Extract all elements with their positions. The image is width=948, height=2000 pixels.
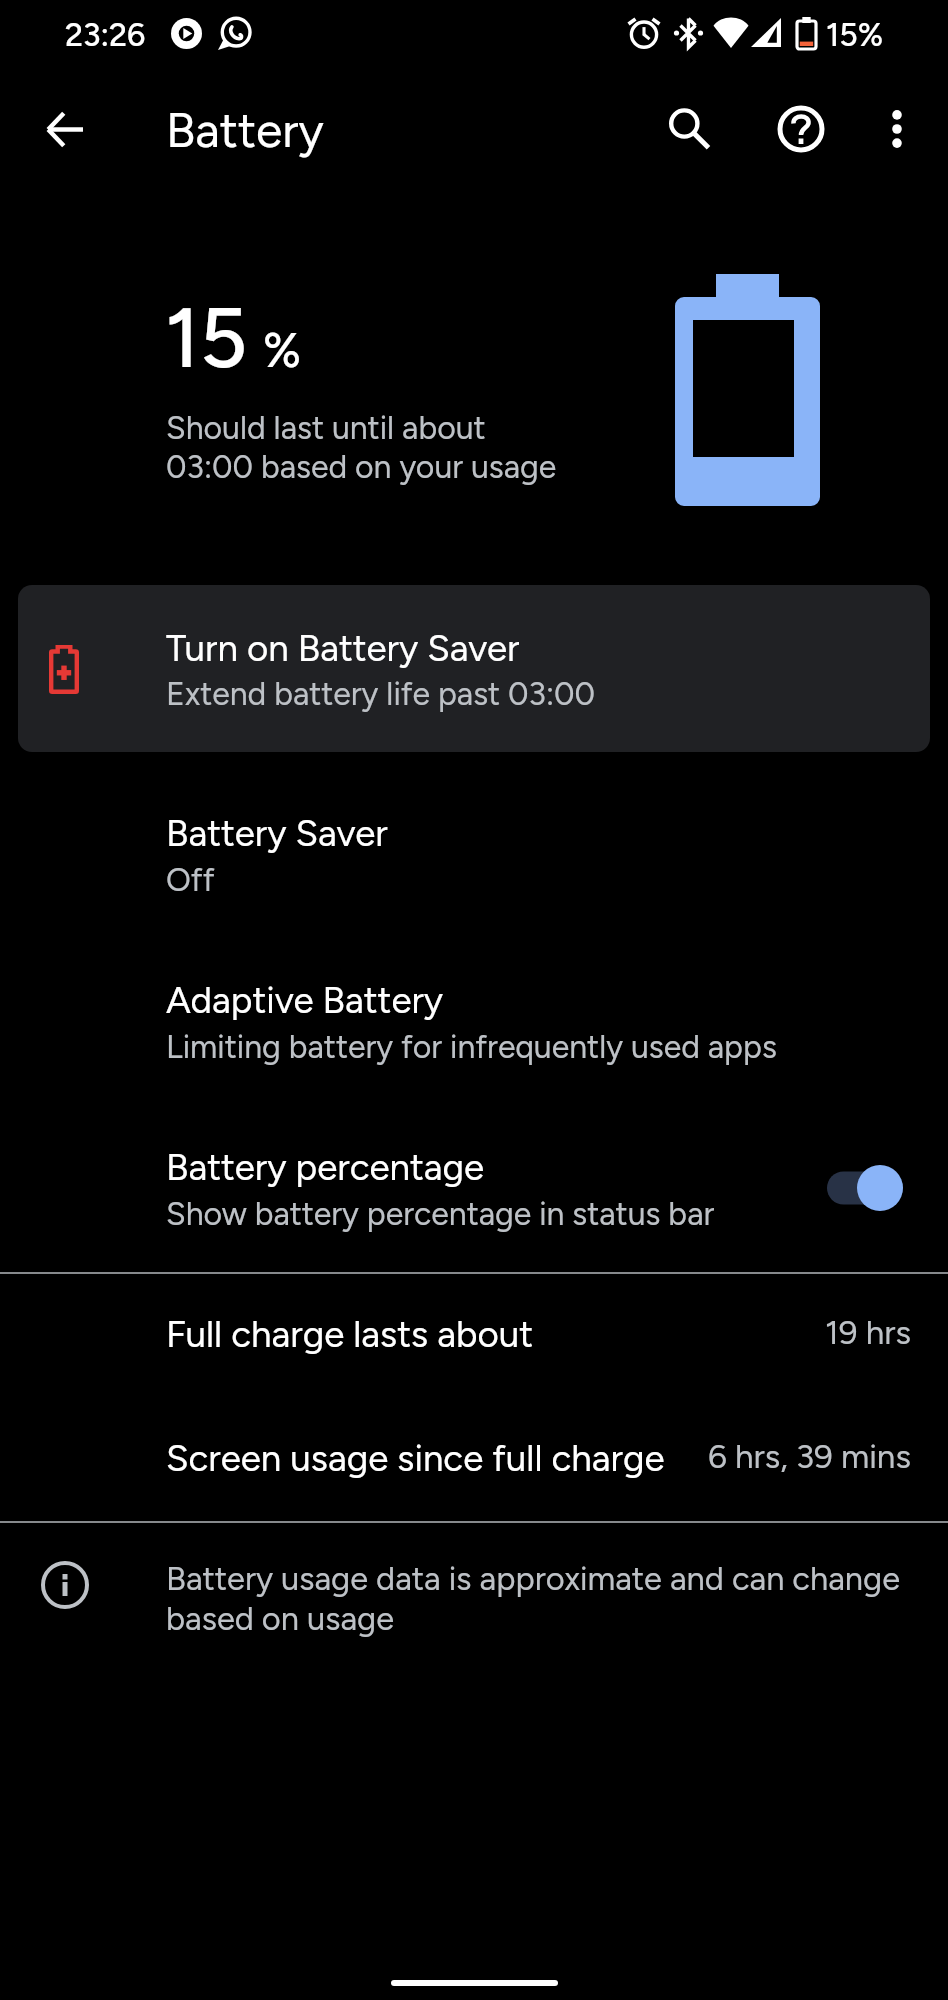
staticText: 15: [165, 287, 248, 388]
button[interactable]: Screen usage since full charge: [0, 1406, 948, 1516]
staticText: 15%: [826, 15, 884, 54]
button[interactable]: More options: [857, 89, 937, 169]
staticText: 23:26: [65, 15, 146, 54]
button[interactable]: Turn on Battery Saver: [18, 585, 930, 752]
staticText: Battery: [166, 101, 324, 160]
button[interactable]: Battery percentage: [0, 1117, 948, 1257]
button[interactable]: Adaptive Battery: [0, 950, 948, 1090]
staticText: Extend battery life past 03:00: [166, 674, 596, 713]
button[interactable]: Navigate up: [24, 89, 104, 169]
button[interactable]: Battery percentage toggle: [817, 1156, 913, 1220]
staticText: Battery percentage: [166, 1145, 485, 1190]
staticText: Show battery percentage in status bar: [166, 1194, 715, 1233]
staticText: 19 hrs: [825, 1312, 911, 1353]
staticText: 6 hrs, 39 mins: [708, 1436, 911, 1477]
staticText: %: [263, 321, 302, 380]
staticText: Turn on Battery Saver: [166, 626, 520, 671]
staticText: 03:00 based on your usage: [166, 447, 557, 486]
staticText: Battery usage data is approximate and ca…: [166, 1559, 911, 1639]
staticText: Should last until about: [166, 408, 486, 447]
staticText: Off: [166, 860, 215, 899]
staticText: Adaptive Battery: [166, 978, 444, 1023]
button[interactable]: Battery Saver: [0, 783, 948, 923]
button[interactable]: Help: [761, 89, 841, 169]
staticText: Battery Saver: [166, 811, 388, 856]
staticText: Full charge lasts about: [166, 1312, 534, 1357]
button[interactable]: Full charge lasts about: [0, 1282, 948, 1392]
staticText: Screen usage since full charge: [166, 1436, 665, 1481]
staticText: Limiting battery for infrequently used a…: [166, 1027, 777, 1066]
button[interactable]: Search: [646, 86, 726, 166]
